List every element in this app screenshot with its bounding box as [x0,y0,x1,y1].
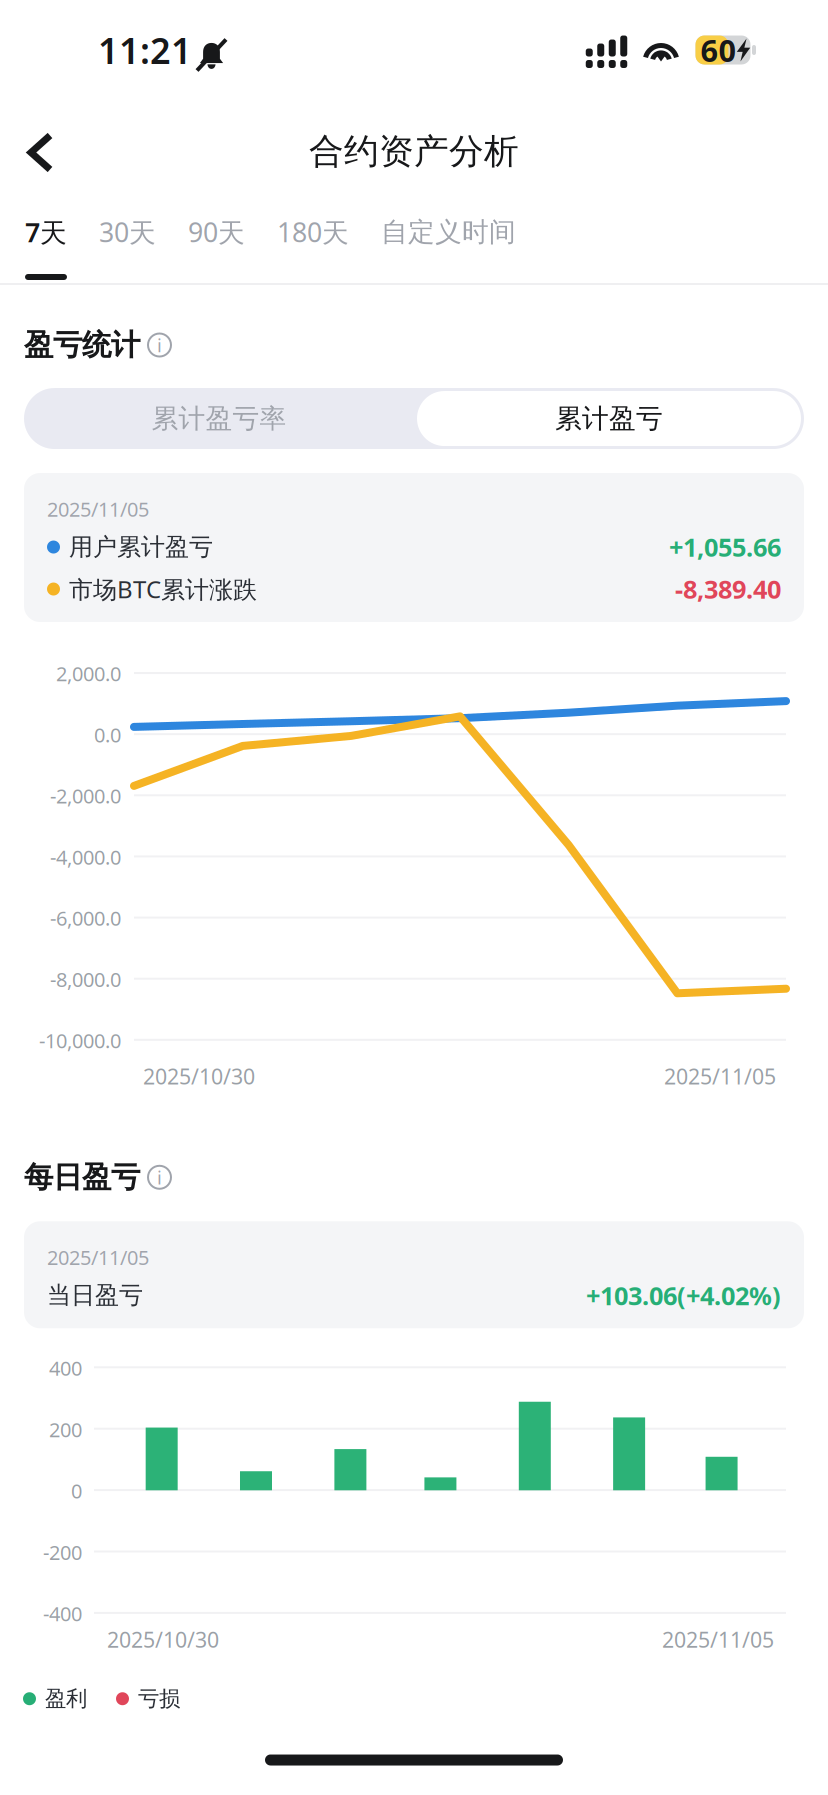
staticText: -10,000.0 [39,1027,121,1054]
staticText: 2025/10/30 [107,1625,219,1654]
staticText: -400 [43,1600,82,1627]
staticText: 2025/11/05 [664,1062,776,1090]
button[interactable]: 7天 [9,197,83,283]
staticText: 180天 [277,214,349,250]
staticText: 30天 [99,214,156,250]
staticText: 合约资产分析 [309,130,519,173]
staticText: -8,000.0 [50,966,121,993]
staticText: 2025/11/05 [47,1244,149,1271]
staticText: 用户累计盈亏 [69,532,213,562]
staticText: 当日盈亏 [47,1281,143,1310]
staticText: 400 [49,1355,82,1381]
staticText: 90天 [188,214,245,250]
staticText: -4,000.0 [50,844,121,870]
button[interactable]: 累计盈亏 [414,388,804,449]
staticText: +103.06(+4.02%) [586,1278,781,1312]
staticText: i [157,333,162,357]
button[interactable]: 30天 [83,197,172,283]
staticText: 200 [49,1416,82,1443]
staticText: +1,055.66 [669,530,781,564]
staticText: 盈利 [45,1686,87,1712]
staticText: 2025/11/05 [47,496,149,522]
staticText: 每日盈亏 [24,1159,140,1195]
button[interactable]: Back [0,101,84,195]
staticText: -2,000.0 [50,783,121,809]
button[interactable]: 自定义时间 [365,197,532,283]
staticText: 0 [71,1477,82,1504]
staticText: 累计盈亏率 [151,402,286,435]
staticText: 盈亏统计 [24,327,140,363]
staticText: 11:21 [98,26,192,74]
staticText: 亏损 [138,1686,180,1712]
staticText: i [157,1165,162,1190]
button[interactable]: 180天 [261,197,365,283]
staticText: 0.0 [94,721,121,748]
staticText: 累计盈亏 [555,402,663,435]
button[interactable]: 90天 [172,197,261,283]
staticText: -6,000.0 [50,905,121,931]
staticText: -200 [43,1539,82,1565]
staticText: 市场BTC累计涨跌 [69,573,257,605]
button[interactable]: 累计盈亏率 [24,388,414,449]
staticText: 2025/10/30 [143,1062,255,1090]
staticText: -8,389.40 [675,572,781,606]
staticText: 2025/11/05 [662,1625,774,1654]
staticText: 7天 [25,214,67,250]
staticText: 2,000.0 [56,660,121,687]
staticText: 60 [700,30,736,70]
staticText: 自定义时间 [381,216,516,248]
